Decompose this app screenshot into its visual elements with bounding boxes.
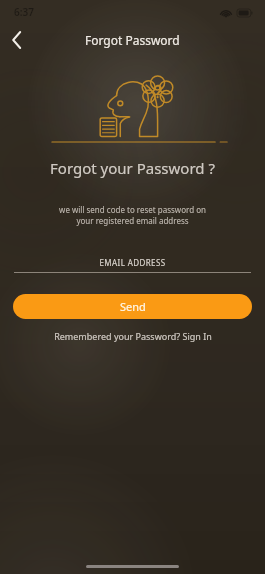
other: Forgot password illustration — [92, 77, 174, 139]
staticText: 6:37 — [14, 5, 34, 19]
button[interactable]: Send — [13, 294, 252, 319]
button[interactable]: EMAIL ADDRESS — [14, 257, 251, 273]
staticText: EMAIL ADDRESS — [14, 257, 251, 268]
staticText: Forgot your Password ? — [0, 158, 265, 178]
staticText: Remembered your Password? Sign In — [54, 330, 212, 342]
button[interactable]: Back — [0, 24, 34, 56]
button[interactable]: Remembered your Password? Sign In — [0, 330, 265, 342]
staticText: Forgot Password — [85, 32, 180, 48]
staticText: we will send code to reset password on y… — [24, 204, 241, 227]
staticText: Send — [120, 299, 146, 314]
